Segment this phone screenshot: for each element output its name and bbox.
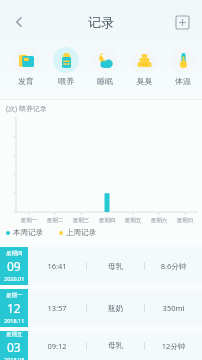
staticText: 16:41 [28,261,86,271]
staticText: 星期三 [68,217,94,224]
staticText: 星期一 [16,217,42,224]
staticText: 03 [7,339,21,355]
button[interactable]: 睡眠 [85,44,124,96]
staticText: 12分钟 [145,341,202,351]
staticText: 350ml [145,303,202,313]
staticText: 发育 [18,76,34,86]
staticText: (次) 喂养记录 [6,104,48,114]
staticText: 09 [7,258,21,274]
staticText: 8.6分钟 [145,261,202,271]
staticText: 09:12 [28,341,86,351]
staticText: 上周记录 [66,228,96,237]
staticText: 喂养 [58,76,74,86]
staticText: 2018.08 [4,356,25,360]
staticText: 13:57 [28,303,86,313]
button[interactable]: Back [4,7,34,37]
staticText: 母乳 [87,262,144,271]
button[interactable]: 体温 [163,44,202,96]
staticText: 本周记录 [13,228,43,237]
button[interactable]: 臭臭 [124,44,163,96]
staticText: 母乳 [87,341,144,350]
staticText: 2020.01 [4,275,25,282]
staticText: 星期六 [146,217,172,224]
staticText: 星期四 [6,250,23,257]
staticText: 12 [7,300,21,316]
staticText: 睡眠 [97,76,113,86]
staticText: 体温 [175,76,191,86]
staticText: 星期一 [6,292,23,299]
staticText: 星期日 [172,217,198,224]
button[interactable]: 星期一 [0,289,202,327]
staticText: 记录 [88,14,114,30]
button[interactable]: 喂养 [46,44,85,96]
staticText: 臭臭 [136,76,152,86]
button[interactable]: Add record [170,10,194,34]
staticText: 瓶奶 [87,304,144,313]
staticText: 星期五 [6,331,23,338]
staticText: 星期四 [94,217,120,224]
button[interactable]: 星期五 [0,331,202,360]
staticText: 星期五 [120,217,146,224]
button[interactable]: 发育 [6,44,46,96]
staticText: 2018.11 [4,317,25,324]
staticText: 星期二 [42,217,68,224]
button[interactable]: 星期四 [0,247,202,285]
